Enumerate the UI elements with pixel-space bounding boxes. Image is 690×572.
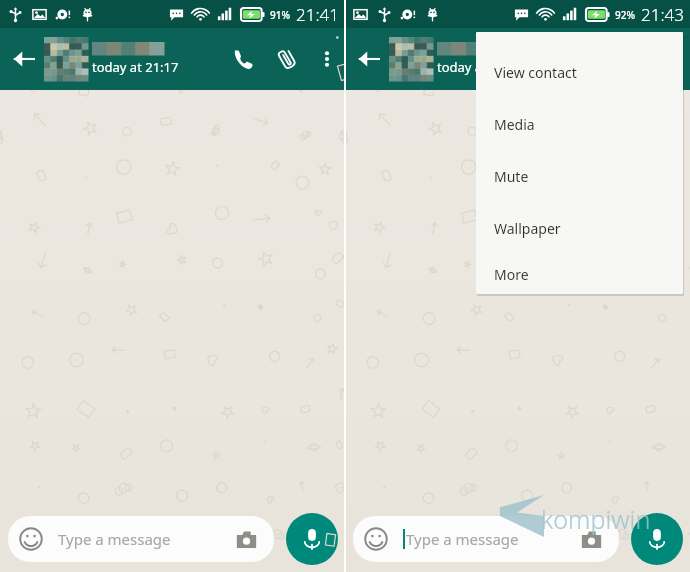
button[interactable]: today at [389,37,509,81]
button[interactable]: Call [566,37,610,81]
button[interactable]: Attach [265,37,309,81]
button[interactable]: Camera [230,523,262,555]
staticText: 21:41 [296,3,339,26]
staticText: Type a message [58,529,171,549]
button[interactable]: Mute [476,150,683,202]
button[interactable]: Wallpaper [476,202,683,254]
staticText: Mute [494,167,529,186]
button[interactable]: Emoji [360,523,392,555]
staticText: Wallpaper [494,219,561,238]
button[interactable]: More options [654,41,690,77]
staticText: More [494,265,529,284]
button[interactable]: Emoji [8,516,274,562]
staticText: 91% [270,8,290,22]
staticText: 92% [615,8,635,22]
staticText: Media [494,115,535,134]
staticText: today at 21:17 [92,58,179,76]
staticText: Type a message [406,529,519,549]
button[interactable]: today at 21:17 [44,37,179,81]
staticText: View contact [494,63,577,82]
button[interactable]: Back [349,39,389,79]
staticText: today at [437,58,487,76]
button[interactable]: Voice message [631,513,683,565]
button[interactable]: Media [476,98,683,150]
button[interactable]: Emoji [15,523,47,555]
button[interactable]: Call [221,37,265,81]
button[interactable]: Emoji [353,516,619,562]
button[interactable]: More options [309,41,345,77]
button[interactable]: More [476,254,683,294]
staticText: 21:43 [641,3,684,26]
button[interactable]: Camera [575,523,607,555]
staticText: kompiwin [541,502,651,536]
button[interactable]: Back [4,39,44,79]
button[interactable]: View contact [476,46,683,98]
button[interactable]: Voice message [286,513,338,565]
